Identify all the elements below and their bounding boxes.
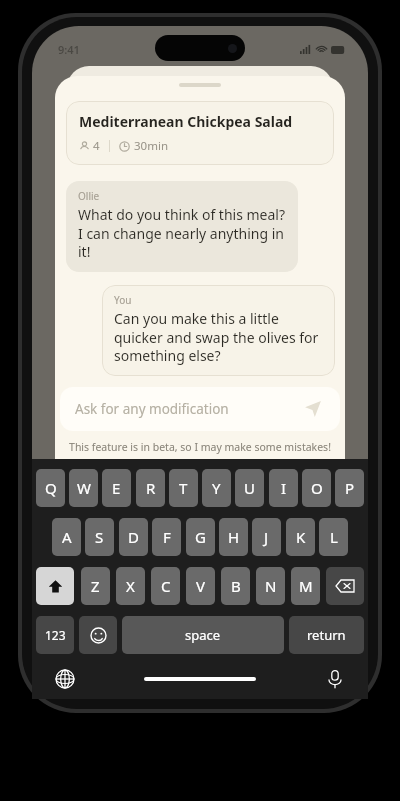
button[interactable]: T [169, 469, 198, 507]
button[interactable]: Shift [36, 567, 74, 605]
staticText: T [179, 478, 188, 498]
staticText: P [345, 478, 355, 498]
staticText: O [311, 478, 323, 498]
button[interactable]: Z [81, 567, 110, 605]
button[interactable]: D [119, 518, 148, 556]
staticText: This feature is in beta, so I may make s… [55, 440, 345, 454]
staticText: R [146, 478, 156, 498]
button[interactable]: G [186, 518, 215, 556]
button[interactable]: space [122, 616, 284, 654]
button[interactable]: N [256, 567, 285, 605]
staticText: D [128, 527, 139, 547]
button[interactable]: Ask for any modification [60, 387, 340, 431]
button[interactable]: R [136, 469, 165, 507]
button[interactable]: P [335, 469, 364, 507]
staticText: Can you make this a little quicker and s… [114, 309, 325, 365]
button[interactable]: I [269, 469, 298, 507]
button[interactable]: You [102, 285, 335, 376]
button[interactable]: M [291, 567, 320, 605]
staticText: Q [45, 478, 57, 498]
button[interactable]: H [219, 518, 248, 556]
staticText: G [195, 527, 206, 547]
staticText: J [264, 527, 269, 547]
staticText: 30min [134, 138, 168, 154]
button[interactable]: B [221, 567, 250, 605]
staticText: L [330, 527, 338, 547]
staticText: Ollie [78, 189, 100, 203]
staticText: X [126, 576, 135, 596]
button[interactable]: U [235, 469, 264, 507]
button[interactable]: X [116, 567, 145, 605]
button[interactable]: F [152, 518, 181, 556]
button[interactable]: J [252, 518, 281, 556]
button[interactable]: Change keyboard [52, 666, 78, 692]
button[interactable]: Emoji [79, 616, 117, 654]
staticText: M [299, 576, 313, 596]
staticText: C [161, 576, 171, 596]
button[interactable]: E [102, 469, 131, 507]
staticText: B [231, 576, 241, 596]
button[interactable]: Dictate [322, 666, 348, 692]
button[interactable]: C [151, 567, 180, 605]
staticText: H [228, 527, 240, 547]
staticText: A [62, 527, 72, 547]
button[interactable]: Ollie [66, 181, 298, 272]
staticText: I [281, 478, 287, 498]
button[interactable]: Send [301, 397, 325, 421]
staticText: E [112, 478, 121, 498]
button[interactable]: K [286, 518, 315, 556]
staticText: You [114, 293, 132, 307]
staticText: K [296, 527, 306, 547]
button[interactable]: return [289, 616, 364, 654]
button[interactable]: Y [202, 469, 231, 507]
button[interactable]: S [85, 518, 114, 556]
staticText: F [163, 527, 171, 547]
staticText: 4 [93, 138, 100, 154]
button[interactable]: O [302, 469, 331, 507]
button[interactable]: 123 [36, 616, 74, 654]
staticText: V [196, 576, 206, 596]
button[interactable]: Q [36, 469, 65, 507]
button[interactable]: Mediterranean Chickpea Salad [66, 101, 334, 165]
staticText: Y [212, 478, 221, 498]
staticText: Ask for any modification [75, 400, 301, 418]
button[interactable]: V [186, 567, 215, 605]
staticText: Z [91, 576, 100, 596]
staticText: What do you think of this meal? I can ch… [78, 205, 288, 261]
staticText: S [95, 527, 104, 547]
button[interactable]: W [69, 469, 98, 507]
staticText: U [244, 478, 255, 498]
button[interactable]: A [52, 518, 81, 556]
staticText: Mediterranean Chickpea Salad [79, 112, 293, 131]
staticText: space [185, 626, 221, 644]
staticText: 123 [45, 627, 66, 643]
staticText: W [77, 478, 91, 498]
button[interactable]: Backspace [326, 567, 364, 605]
staticText: return [307, 626, 346, 644]
button[interactable]: L [319, 518, 348, 556]
staticText: N [265, 576, 277, 596]
staticText: 9:41 [58, 42, 80, 57]
